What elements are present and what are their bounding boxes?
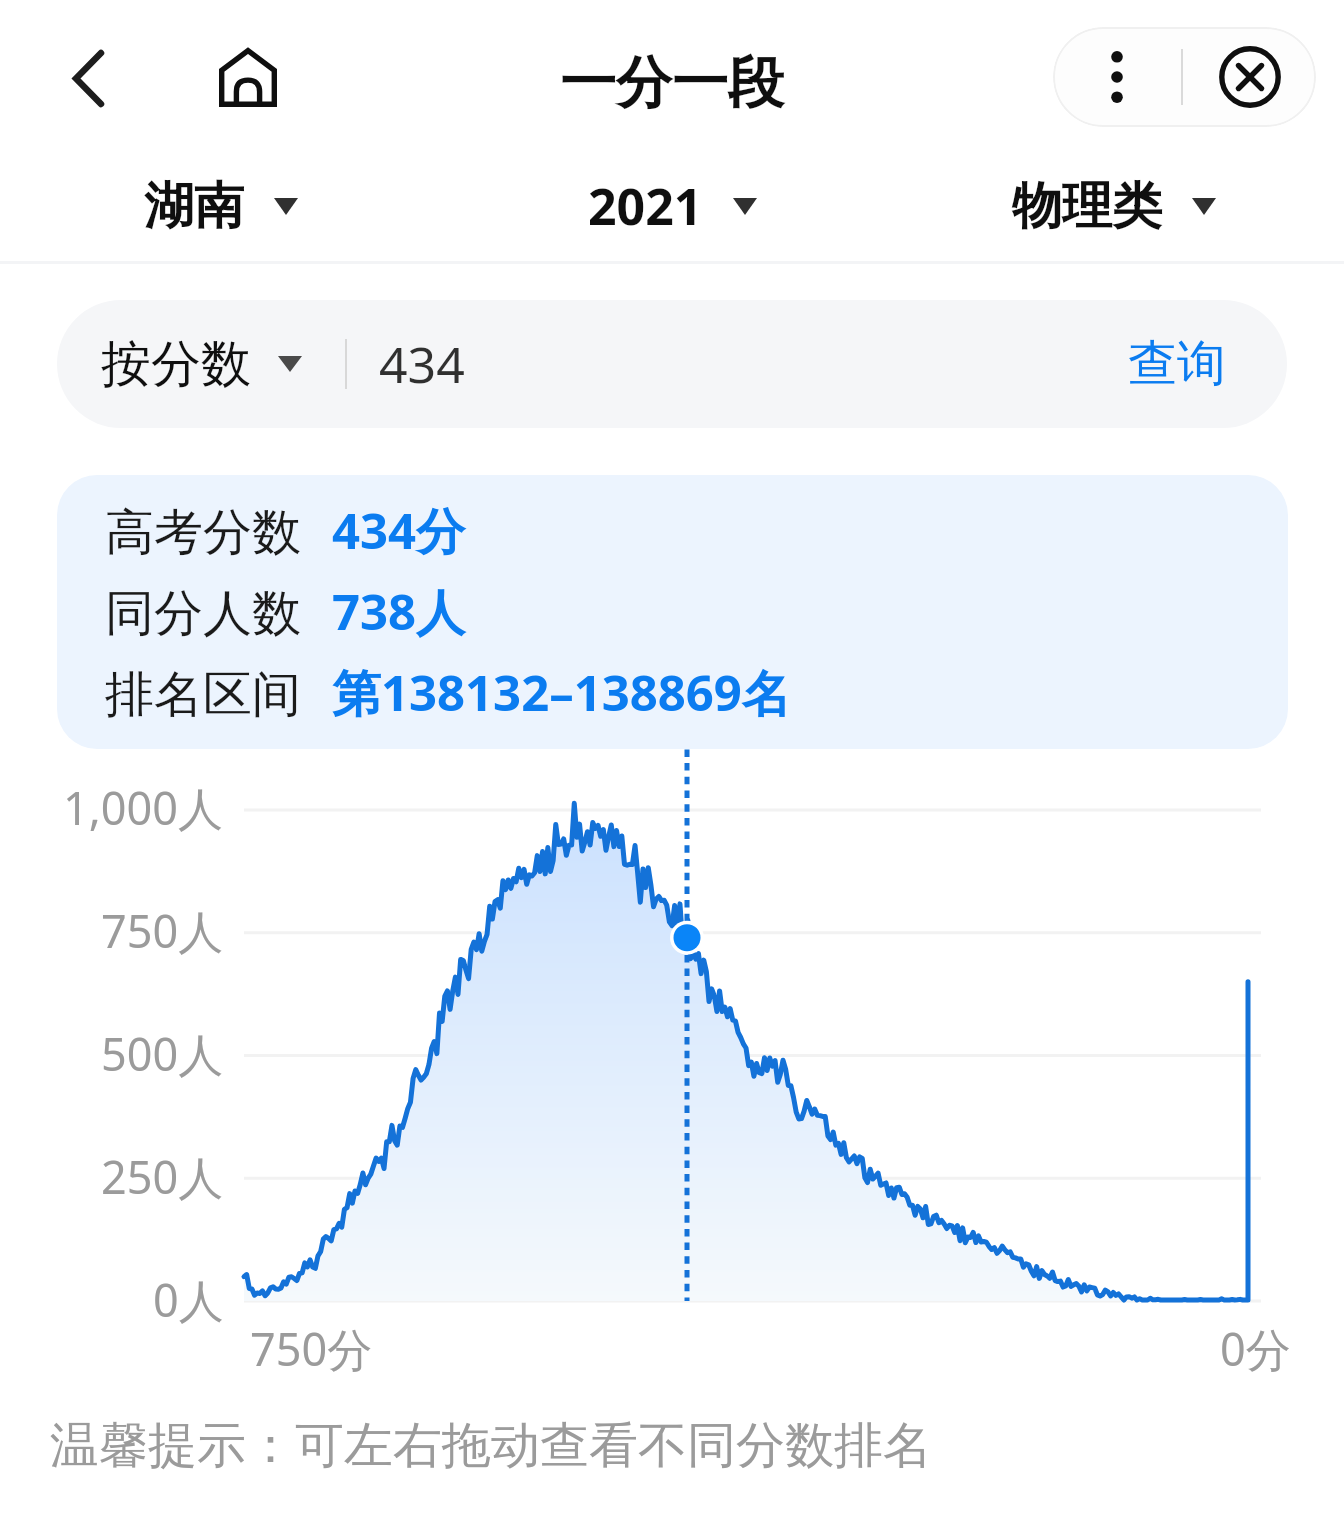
staticText: 排名区间 (105, 664, 301, 726)
staticText: 温馨提示：可左右拖动查看不同分数排名 (50, 1415, 932, 1477)
staticText: 湖南 (144, 175, 244, 238)
staticText: 250人 (101, 1146, 224, 1207)
button[interactable]: Home (200, 29, 296, 125)
staticText: 物理类 (1012, 175, 1162, 238)
staticText: 2021 (588, 172, 703, 240)
staticText: 同分人数 (105, 583, 301, 645)
staticText: 750人 (101, 900, 224, 961)
button[interactable]: 按分数 (87, 300, 316, 428)
staticText: 高考分数 (105, 502, 301, 564)
staticText: 查询 (1128, 333, 1226, 395)
staticText: 1,000人 (63, 777, 224, 838)
button[interactable]: Back (50, 30, 126, 126)
button[interactable]: 查询 (1079, 300, 1275, 428)
staticText: 0人 (153, 1269, 224, 1330)
staticText: 434分 (332, 497, 466, 564)
button[interactable]: Close (1184, 27, 1316, 127)
button[interactable]: 湖南 (130, 157, 312, 256)
button[interactable]: 物理类 (998, 157, 1230, 256)
staticText: 738人 (332, 578, 466, 645)
button[interactable]: More options (1053, 27, 1181, 127)
staticText: 0分 (1220, 1318, 1291, 1379)
staticText: 第138132–138869名 (332, 659, 791, 726)
staticText: 500人 (101, 1023, 224, 1084)
staticText: 按分数 (101, 333, 251, 396)
staticText: 434 (379, 330, 465, 398)
staticText: 一分一段 (560, 48, 784, 119)
staticText: 750分 (250, 1318, 373, 1379)
button[interactable]: 2021 (574, 154, 771, 258)
